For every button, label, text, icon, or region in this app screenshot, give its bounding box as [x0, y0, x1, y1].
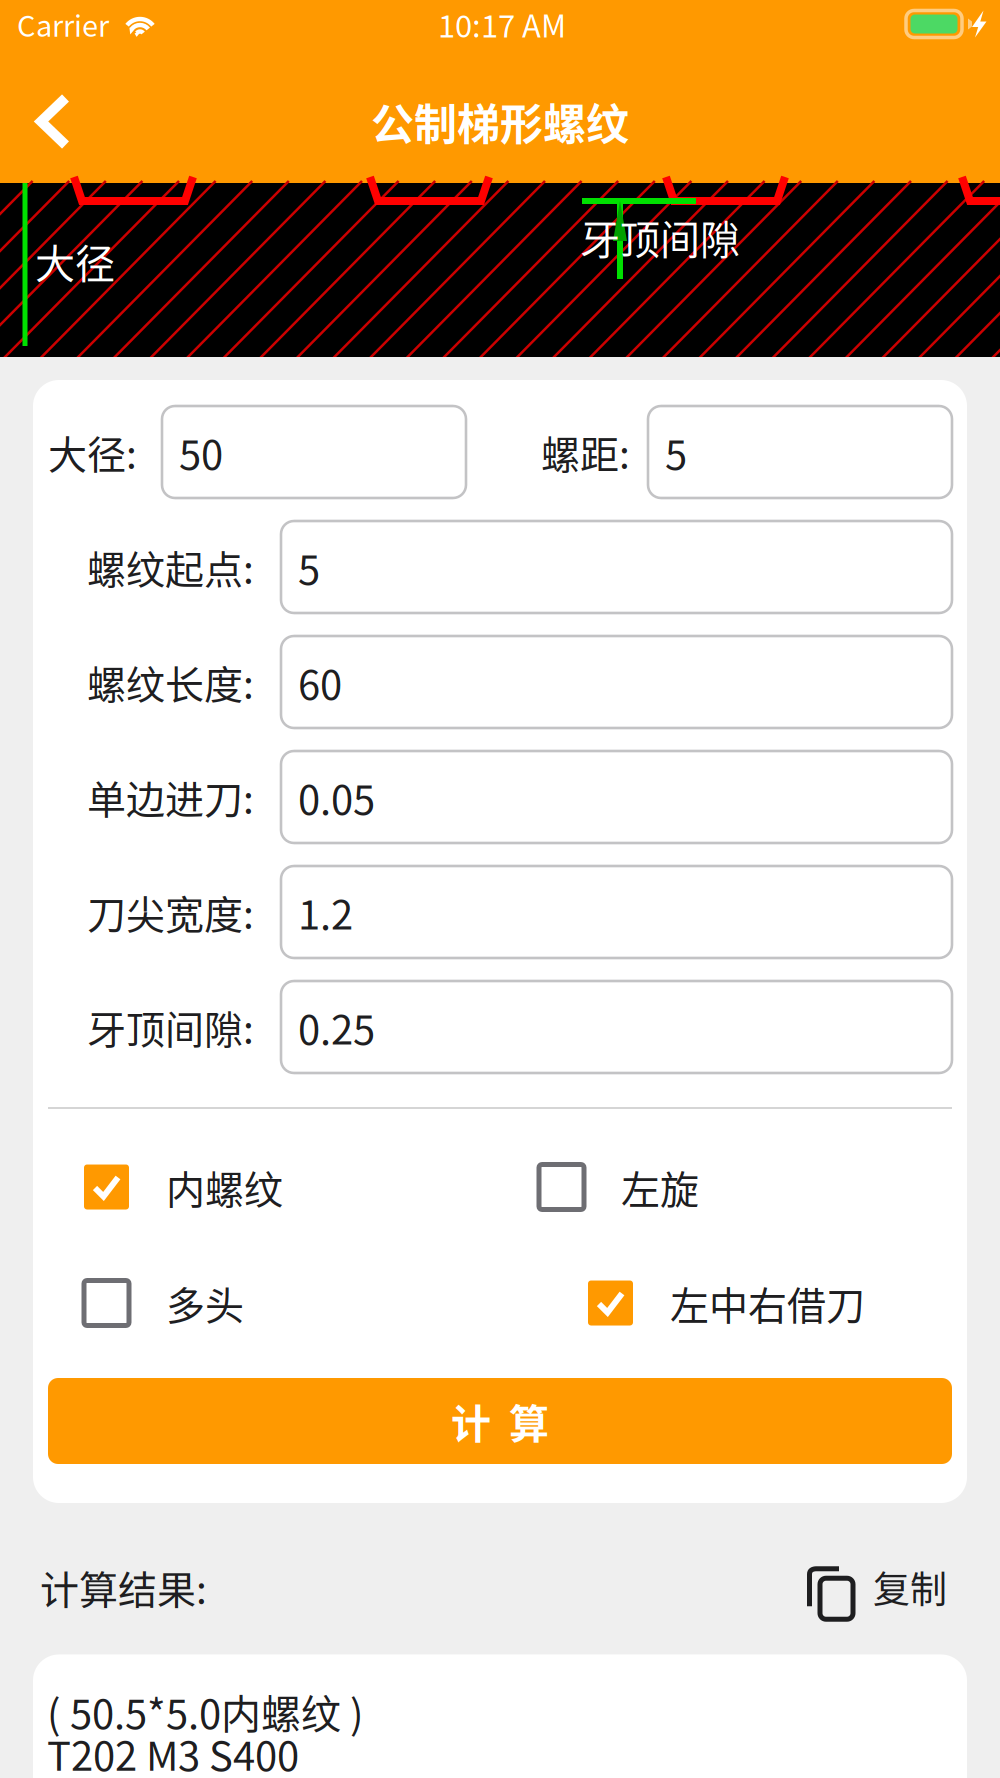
staticText: 公制梯形螺纹: [371, 90, 629, 153]
staticText: 60: [298, 653, 342, 711]
staticText: 1.2: [298, 883, 353, 941]
staticText: 0.05: [298, 768, 375, 826]
staticText: 0.25: [298, 998, 375, 1056]
staticText: Carrier: [17, 3, 109, 45]
staticText: 螺距:: [541, 424, 630, 480]
staticText: 左旋: [621, 1159, 699, 1215]
staticText: 左中右借刀: [670, 1275, 865, 1331]
staticText: ( 50.5*5.0内螺纹 ): [47, 1682, 364, 1740]
button[interactable]: 内螺纹: [84, 1157, 283, 1217]
staticText: 大径: [35, 232, 115, 290]
staticText: 5: [298, 538, 320, 596]
staticText: 单边进刀:: [87, 769, 254, 825]
staticText: 50: [179, 423, 223, 481]
button[interactable]: 左中右借刀: [588, 1273, 865, 1333]
staticText: 螺纹起点:: [87, 539, 254, 595]
staticText: 10:17 AM: [438, 2, 566, 46]
button[interactable]: 计 算: [48, 1378, 952, 1464]
staticText: 牙顶间隙: [580, 208, 740, 266]
staticText: 计 算: [451, 1392, 549, 1450]
button[interactable]: 多头: [84, 1273, 244, 1333]
staticText: T202 M3 S400: [47, 1724, 299, 1778]
button[interactable]: 复制: [801, 1560, 947, 1614]
staticText: 5: [665, 423, 687, 481]
button[interactable]: 左旋: [539, 1157, 699, 1217]
staticText: 复制: [873, 1560, 947, 1614]
staticText: 螺纹长度:: [87, 654, 254, 710]
staticText: 牙顶间隙:: [87, 999, 254, 1055]
staticText: 计算结果:: [40, 1559, 207, 1615]
staticText: 刀尖宽度:: [87, 884, 254, 940]
staticText: 内螺纹: [166, 1159, 283, 1215]
staticText: 多头: [166, 1275, 244, 1331]
staticText: 大径:: [48, 424, 137, 480]
button[interactable]: 返回: [0, 66, 106, 176]
